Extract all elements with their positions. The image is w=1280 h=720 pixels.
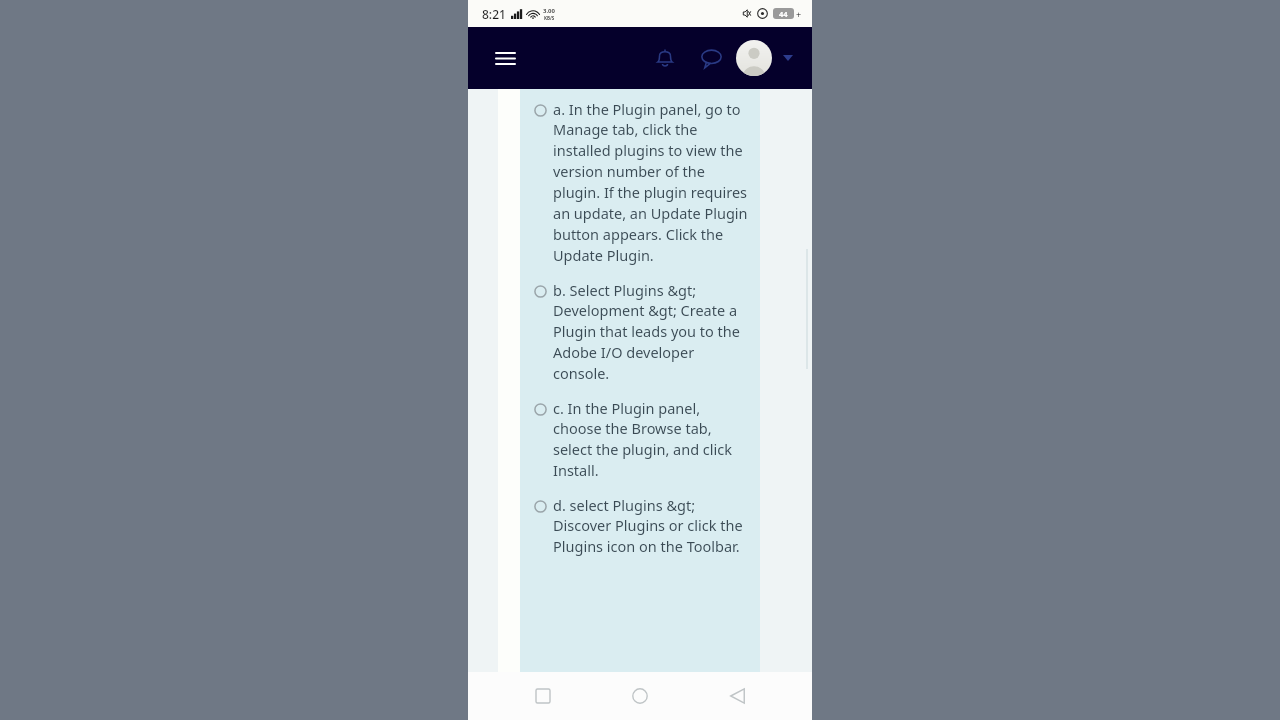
- staticText: c. In the Plugin panel, choose the Brows…: [553, 398, 750, 481]
- staticText: 3.00: [543, 7, 555, 15]
- button[interactable]: Notifications: [646, 39, 684, 77]
- staticText: d. select Plugins &gt; Discover Plugins …: [553, 495, 750, 557]
- button[interactable]: Messages: [692, 39, 730, 77]
- button[interactable]: Menu: [488, 41, 522, 75]
- button[interactable]: Account options: [776, 46, 800, 70]
- button[interactable]: Profile: [736, 40, 772, 76]
- button[interactable]: b. Select Plugins &gt; Development &gt; …: [534, 280, 750, 384]
- button[interactable]: Back: [715, 674, 759, 718]
- button[interactable]: d. select Plugins &gt; Discover Plugins …: [534, 495, 750, 557]
- button[interactable]: Home: [618, 674, 662, 718]
- staticText: a. In the Plugin panel, go to Manage tab…: [553, 99, 750, 266]
- staticText: +: [796, 8, 802, 20]
- staticText: 44: [779, 9, 788, 19]
- staticText: b. Select Plugins &gt; Development &gt; …: [553, 280, 750, 384]
- button[interactable]: a. In the Plugin panel, go to Manage tab…: [534, 99, 750, 266]
- staticText: KB/S: [544, 15, 555, 21]
- button[interactable]: Recent apps: [521, 674, 565, 718]
- staticText: 8:21: [482, 6, 506, 22]
- button[interactable]: c. In the Plugin panel, choose the Brows…: [534, 398, 750, 481]
